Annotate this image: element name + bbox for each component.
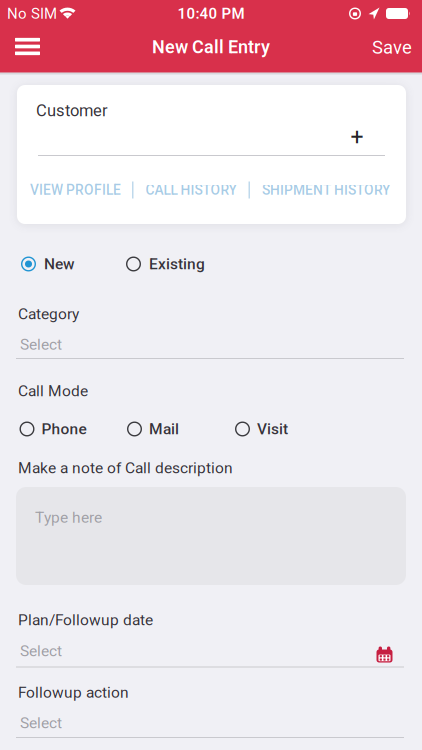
staticText: + [350,123,363,150]
staticText: Call Mode [18,382,88,400]
staticText: VIEW PROFILE [30,182,121,198]
staticText: Existing [149,255,205,273]
button[interactable]: Add customer [342,119,371,154]
staticText: Followup action [18,683,129,702]
button[interactable]: Phone [19,416,86,442]
staticText: Mail [149,420,179,438]
staticText: SHIPMENT HISTORY [262,182,390,198]
staticText: CALL HISTORY [145,182,236,198]
staticText: Make a note of Call description [18,459,233,477]
button[interactable]: SHIPMENT HISTORY [262,182,390,198]
button[interactable]: Menu [3,26,52,67]
staticText: Visit [257,420,288,438]
button[interactable]: Save [362,27,422,68]
staticText: Category [18,305,79,323]
staticText: Phone [41,420,86,438]
staticText: Select [20,335,62,354]
staticText: Type here [35,508,102,527]
button[interactable]: Existing [126,251,205,277]
staticText: Customer [36,101,108,120]
staticText: 10:40 PM [177,5,244,22]
button[interactable]: Pick date [370,640,399,669]
staticText: New Call Entry [152,36,270,58]
staticText: No SIM [7,5,57,22]
staticText: Plan/Followup date [18,611,153,629]
button[interactable]: New [21,251,75,277]
staticText: New [44,255,75,273]
button[interactable]: VIEW PROFILE [30,182,121,198]
button[interactable]: CALL HISTORY [145,182,236,198]
staticText: Select [20,642,62,660]
staticText: Save [372,37,412,58]
staticText: Select [20,714,62,732]
button[interactable]: Visit [235,416,288,442]
button[interactable]: Mail [127,416,179,442]
